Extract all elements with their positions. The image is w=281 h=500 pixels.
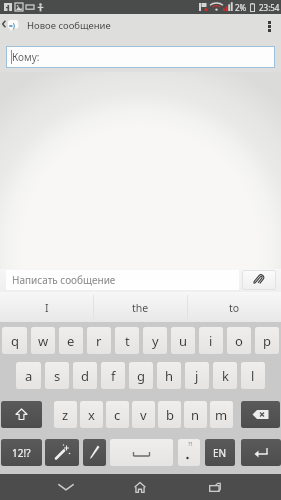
button[interactable]: w [31,327,55,354]
button[interactable]: d [73,362,97,389]
staticText: r [96,332,102,350]
button[interactable]: r [87,327,111,354]
button[interactable]: Emoji [45,439,79,466]
staticText: v [140,406,147,424]
button[interactable]: the [94,292,187,322]
staticText: f [111,367,116,385]
button[interactable]: m [210,401,233,428]
button[interactable]: k [213,362,237,389]
staticText: Кому: [12,50,40,64]
staticText: b [166,406,174,424]
staticText: z [62,406,69,424]
staticText: i [209,332,213,350]
button[interactable]: to [188,292,281,322]
staticText: w [38,332,49,350]
staticText: t [125,332,130,350]
button[interactable]: c [106,401,129,428]
staticText: Написать сообщение [12,273,116,287]
button[interactable]: Handwriting [83,439,106,466]
button[interactable]: s [45,362,69,389]
staticText: n [191,406,200,424]
button[interactable]: Home [118,474,162,500]
button[interactable]: l [241,362,265,389]
button[interactable]: t [115,327,139,354]
staticText: s [54,367,61,385]
button[interactable]: I [0,292,93,322]
staticText: 2% [235,2,247,13]
button[interactable]: v [132,401,155,428]
staticText: h [165,367,174,385]
button[interactable]: Symbols [1,439,42,466]
button[interactable]: Backspace [241,401,280,428]
button[interactable]: q [2,327,27,354]
staticText: ?! [188,440,193,448]
button[interactable]: y [143,327,167,354]
button[interactable]: g [129,362,153,389]
button[interactable]: o [227,327,251,354]
staticText: the [132,301,149,315]
staticText: x [88,406,95,424]
staticText: p [263,332,271,350]
button[interactable]: Кому: [6,46,275,68]
button[interactable]: More options [257,14,281,39]
button[interactable]: Back [0,14,23,39]
staticText: k [222,367,229,385]
staticText: d [81,367,89,385]
button[interactable]: j [185,362,209,389]
button[interactable]: Shift [1,401,42,428]
button[interactable]: Attach [242,270,276,290]
button[interactable]: x [80,401,103,428]
button[interactable]: f [101,362,125,389]
button[interactable]: Period [178,439,200,466]
button[interactable]: Recents [193,474,237,500]
staticText: Новое сообщение [27,19,111,32]
button[interactable]: a [16,362,41,389]
button[interactable]: Language [205,439,235,466]
staticText: m [215,406,228,424]
button[interactable]: z [54,401,77,428]
staticText: 23:54 [259,2,280,13]
button[interactable]: u [171,327,195,354]
button[interactable]: p [255,327,279,354]
staticText: u [179,332,188,350]
staticText: EN [213,446,227,460]
staticText: I [45,301,49,315]
staticText: to [229,301,240,315]
staticText: e [67,332,75,350]
staticText: l [251,367,255,385]
button[interactable]: h [157,362,181,389]
staticText: 12!? [12,446,31,460]
button[interactable]: i [199,327,223,354]
button[interactable]: Написать сообщение [6,270,239,290]
staticText: g [137,367,145,385]
button[interactable]: b [158,401,181,428]
staticText: c [114,406,121,424]
button[interactable]: Space [110,439,173,466]
staticText: o [235,332,243,350]
staticText: j [195,367,199,385]
button[interactable]: e [59,327,83,354]
button[interactable]: Back [44,474,88,500]
staticText: y [152,332,159,350]
staticText: q [11,332,19,350]
staticText: a [25,367,33,385]
staticText: =) [9,21,15,30]
button[interactable]: Enter [241,439,281,466]
button[interactable]: n [184,401,207,428]
